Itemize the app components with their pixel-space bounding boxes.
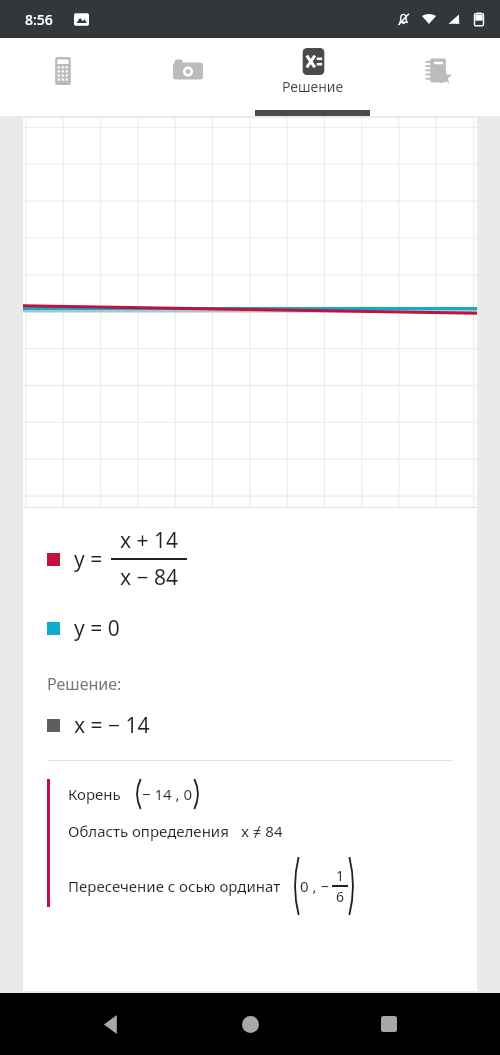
button[interactable]: Решение [250,38,375,116]
staticText: x ≠ 84 [241,821,283,841]
staticText: Решение [282,77,344,96]
staticText: 0 , − [300,876,329,896]
staticText: Пересечение с осью ординат [68,876,281,896]
button[interactable]: Избранное [375,38,500,116]
button[interactable]: Home [222,996,278,1052]
staticText: x = − 14 [74,711,150,740]
staticText: − 14 , 0 [142,784,193,804]
staticText: x + 14 [120,526,179,555]
staticText: 6 [336,887,345,906]
staticText: y = [74,545,103,574]
button[interactable]: Калькулятор [0,38,125,116]
staticText: Решение: [47,673,122,695]
staticText: Область определения [68,821,229,841]
button[interactable]: Back [83,996,139,1052]
staticText: x − 84 [120,563,179,592]
staticText: 8:56 [25,10,53,29]
button[interactable]: Камера [125,38,250,116]
staticText: Корень [68,784,121,804]
button[interactable]: Recents [361,996,417,1052]
staticText: 1 [336,866,345,885]
staticText: y = 0 [74,614,120,643]
